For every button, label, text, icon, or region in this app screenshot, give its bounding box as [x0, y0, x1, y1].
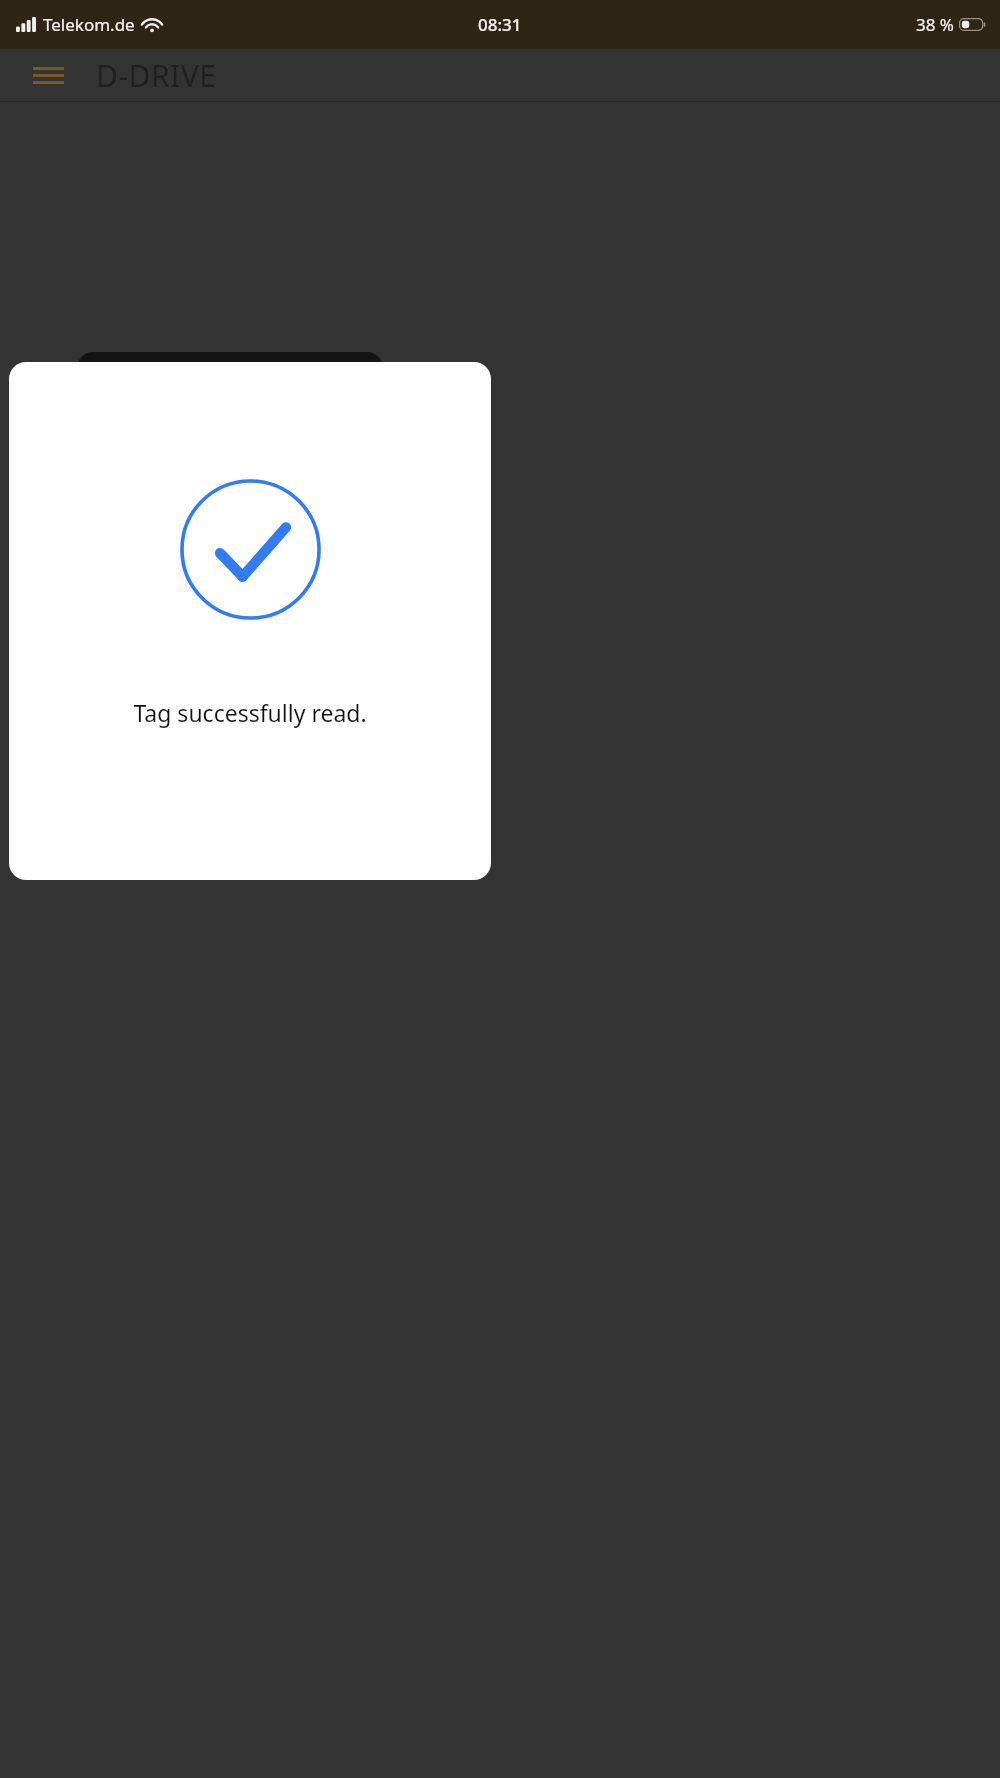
- staticText: 38 %: [916, 13, 954, 36]
- staticText: D-DRIVE: [96, 55, 217, 96]
- staticText: 08:31: [478, 13, 522, 36]
- button[interactable]: Open navigation menu: [30, 57, 66, 93]
- staticText: Tag successfully read.: [133, 697, 367, 728]
- staticText: Telekom.de: [43, 13, 135, 36]
- button[interactable]: Tag successfully read.: [9, 362, 491, 880]
